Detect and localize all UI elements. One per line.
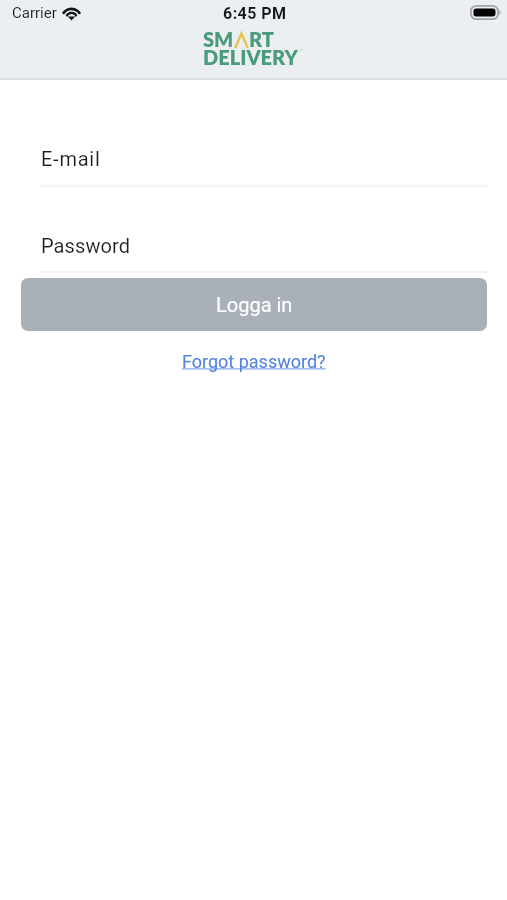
button[interactable]: E-mail (21, 136, 488, 186)
staticText: Password (41, 234, 131, 257)
staticText: A (234, 27, 249, 51)
other: Smart Delivery (203, 27, 307, 65)
other: Wi-Fi signal (60, 3, 83, 20)
staticText: 6:45 PM (223, 4, 287, 23)
staticText: DELIVERY (203, 45, 298, 69)
button[interactable]: Logga in (21, 278, 487, 331)
staticText: Forgot password? (182, 351, 326, 372)
other: Battery full (470, 5, 501, 20)
staticText: Carrier (12, 4, 57, 22)
button[interactable]: Password (21, 223, 488, 271)
staticText: E-mail (41, 147, 101, 170)
staticText: Logga in (216, 293, 293, 316)
staticText: SM (203, 27, 234, 51)
staticText: RT (249, 27, 275, 51)
button[interactable]: Forgot password? (174, 345, 334, 375)
